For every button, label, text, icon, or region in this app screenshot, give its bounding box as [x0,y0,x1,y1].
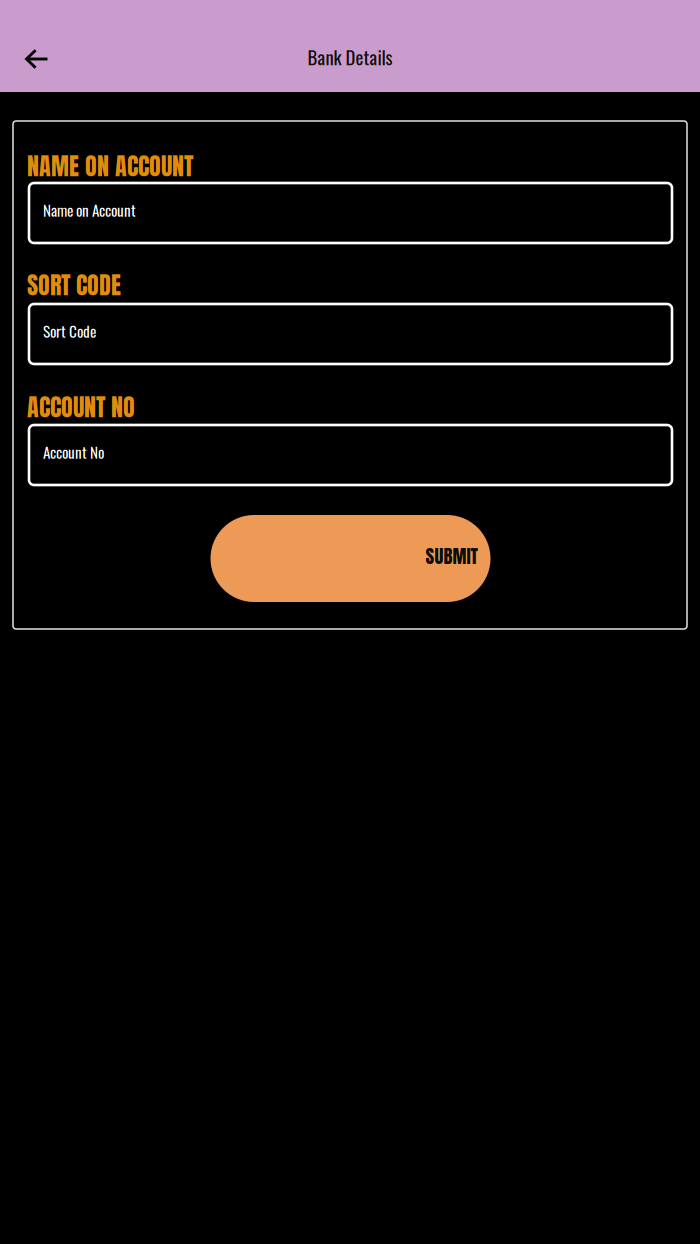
button[interactable]: Name on Account [29,183,672,243]
button[interactable]: Account No [29,425,672,485]
staticText: Account No [43,441,104,463]
staticText: Name on Account [43,199,136,221]
button[interactable]: Back [0,39,65,79]
staticText: Sort Code [43,320,96,342]
staticText: Bank Details [307,43,392,71]
button[interactable]: Sort Code [29,304,672,364]
staticText: SUBMIT [425,542,477,570]
staticText: ACCOUNT NO [27,389,135,425]
staticText: SORT CODE [27,267,121,303]
staticText: NAME ON ACCOUNT [27,148,193,184]
button[interactable]: SUBMIT [210,515,490,602]
